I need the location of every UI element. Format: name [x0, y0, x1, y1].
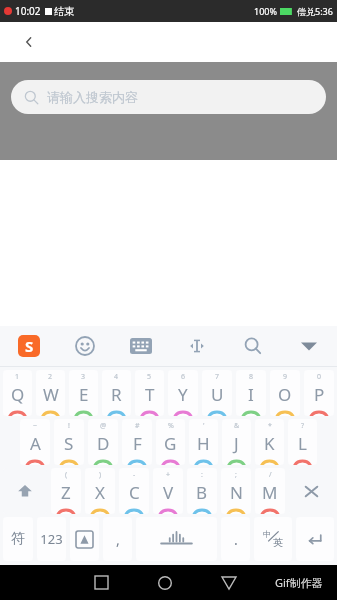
staticText: X	[95, 481, 105, 504]
button[interactable]: +	[153, 468, 183, 514]
staticText: ~	[33, 421, 38, 431]
button[interactable]: 9	[270, 370, 300, 416]
button[interactable]: *	[255, 419, 284, 465]
staticText: R	[111, 383, 122, 406]
staticText: Y	[178, 383, 188, 406]
button[interactable]: Enter	[296, 517, 334, 561]
staticText: D	[97, 432, 110, 455]
button[interactable]: Switch Chinese English	[254, 517, 292, 561]
button[interactable]: )	[85, 468, 115, 514]
button[interactable]: Search	[225, 326, 281, 366]
staticText: (	[65, 470, 68, 480]
staticText: P	[314, 383, 325, 406]
button[interactable]: Sogou	[0, 326, 57, 366]
button[interactable]: Backspace	[289, 468, 334, 514]
button[interactable]: /	[255, 468, 285, 514]
button[interactable]: '	[189, 419, 218, 465]
button[interactable]: :	[187, 468, 217, 514]
button[interactable]: ?	[288, 419, 317, 465]
button[interactable]: @	[88, 419, 118, 465]
staticText: 2	[48, 372, 53, 382]
button[interactable]: 1	[3, 370, 32, 416]
button[interactable]: 请输入搜索内容	[11, 80, 326, 114]
staticText: W	[43, 383, 59, 406]
staticText: 1	[15, 372, 20, 382]
button[interactable]: Move cursor	[169, 326, 225, 366]
staticText: 9	[283, 372, 288, 382]
staticText: I	[248, 383, 254, 406]
staticText: A	[30, 432, 41, 455]
staticText: 偿兑5:36	[297, 5, 333, 17]
staticText: )	[99, 470, 102, 480]
staticText: 0	[317, 372, 322, 382]
staticText: 符	[11, 530, 25, 548]
staticText: H	[197, 432, 210, 455]
staticText: ?	[301, 421, 305, 431]
staticText: 结束	[54, 5, 74, 18]
button[interactable]: Recents	[69, 565, 133, 600]
staticText: 中	[263, 529, 271, 539]
staticText: N	[230, 481, 243, 504]
staticText: /	[269, 470, 272, 480]
staticText: C	[129, 481, 140, 504]
staticText: J	[234, 432, 239, 455]
staticText: B	[196, 481, 208, 504]
staticText: &	[234, 421, 240, 431]
staticText: Z	[61, 481, 71, 504]
button[interactable]: Home	[133, 565, 197, 600]
button[interactable]: !	[54, 419, 84, 465]
staticText: 英	[273, 536, 283, 549]
button[interactable]: ,	[103, 517, 132, 561]
button[interactable]: 8	[236, 370, 266, 416]
button[interactable]: .	[221, 517, 250, 561]
staticText: 6	[181, 372, 186, 382]
button[interactable]: ;	[221, 468, 251, 514]
button[interactable]: Space	[136, 517, 217, 561]
button[interactable]: More	[281, 326, 337, 366]
button[interactable]: Back	[197, 565, 261, 600]
staticText: Gif制作器	[275, 575, 323, 590]
staticText: L	[298, 432, 307, 455]
staticText: 7	[215, 372, 220, 382]
button[interactable]: %	[156, 419, 185, 465]
staticText: K	[264, 432, 275, 455]
staticText: 100%	[254, 5, 277, 17]
staticText: F	[133, 432, 142, 455]
staticText: 请输入搜索内容	[47, 89, 138, 105]
button[interactable]: 4	[102, 370, 131, 416]
button[interactable]: &	[222, 419, 251, 465]
button[interactable]: 6	[168, 370, 198, 416]
button[interactable]: Back	[14, 27, 44, 57]
staticText: *	[268, 421, 272, 431]
staticText: !	[68, 421, 70, 431]
staticText: S	[64, 432, 74, 455]
button[interactable]: Emoji	[57, 326, 113, 366]
button[interactable]: #	[122, 419, 152, 465]
button[interactable]: 5	[135, 370, 164, 416]
button[interactable]: (	[51, 468, 81, 514]
button[interactable]: Keyboard layout	[113, 326, 169, 366]
button[interactable]: 0	[304, 370, 334, 416]
staticText: 4	[114, 372, 119, 382]
staticText: 3	[81, 372, 86, 382]
button[interactable]: 123	[37, 517, 66, 561]
button[interactable]: -	[119, 468, 149, 514]
button[interactable]: 7	[202, 370, 232, 416]
staticText: ;	[235, 470, 237, 480]
button[interactable]: Shift	[3, 468, 47, 514]
button[interactable]: 3	[69, 370, 98, 416]
staticText: ,	[116, 530, 120, 549]
button[interactable]: 2	[36, 370, 65, 416]
staticText: +	[166, 470, 171, 480]
staticText: 10:02	[15, 4, 41, 18]
staticText: :	[201, 470, 203, 480]
staticText: %	[168, 421, 174, 431]
staticText: S	[25, 336, 34, 356]
staticText: Q	[11, 383, 25, 406]
button[interactable]: ~	[20, 419, 50, 465]
staticText: G	[164, 432, 177, 455]
button[interactable]: 符	[3, 517, 33, 561]
staticText: .	[234, 530, 238, 549]
button[interactable]: Chinese input	[70, 517, 99, 561]
staticText: '	[203, 421, 205, 431]
